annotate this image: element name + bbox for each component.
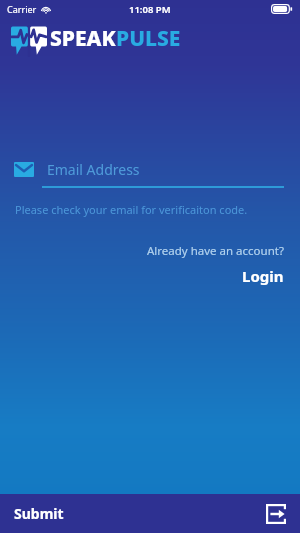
staticText: 11:08 PM bbox=[129, 3, 171, 16]
other: Submit bbox=[266, 504, 286, 524]
button[interactable]: Email Address bbox=[0, 152, 300, 186]
staticText: Please check your email for verificaiton… bbox=[15, 202, 248, 217]
staticText: Email Address bbox=[47, 160, 140, 179]
staticText: Login bbox=[242, 266, 284, 286]
button[interactable]: Already have an account? bbox=[0, 243, 284, 286]
staticText: PULSE bbox=[116, 24, 181, 53]
staticText: Already have an account? bbox=[147, 243, 284, 259]
staticText: SPEAK bbox=[50, 24, 116, 53]
staticText: Submit bbox=[14, 504, 64, 523]
button[interactable]: Submit bbox=[0, 494, 300, 533]
staticText: Carrier bbox=[7, 3, 37, 15]
